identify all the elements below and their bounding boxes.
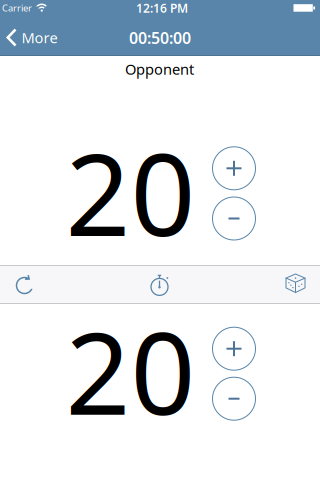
staticText: 20 xyxy=(65,117,195,267)
staticText: 20 xyxy=(65,295,195,446)
staticText: 00:50:00 xyxy=(129,27,191,48)
staticText: Opponent xyxy=(125,59,194,79)
button[interactable]: Increment xyxy=(212,147,255,190)
button[interactable]: Increment xyxy=(212,327,255,370)
button[interactable]: Decrement xyxy=(212,197,255,240)
button[interactable]: Roll dice xyxy=(285,273,305,293)
button[interactable]: Decrement xyxy=(212,377,255,420)
staticText: 12:16 PM xyxy=(136,0,188,16)
button[interactable]: Back to More xyxy=(6,28,57,47)
button[interactable]: Timer xyxy=(149,274,169,295)
staticText: Carrier xyxy=(2,2,32,14)
button[interactable]: Reset xyxy=(14,274,34,294)
staticText: More xyxy=(21,28,57,47)
